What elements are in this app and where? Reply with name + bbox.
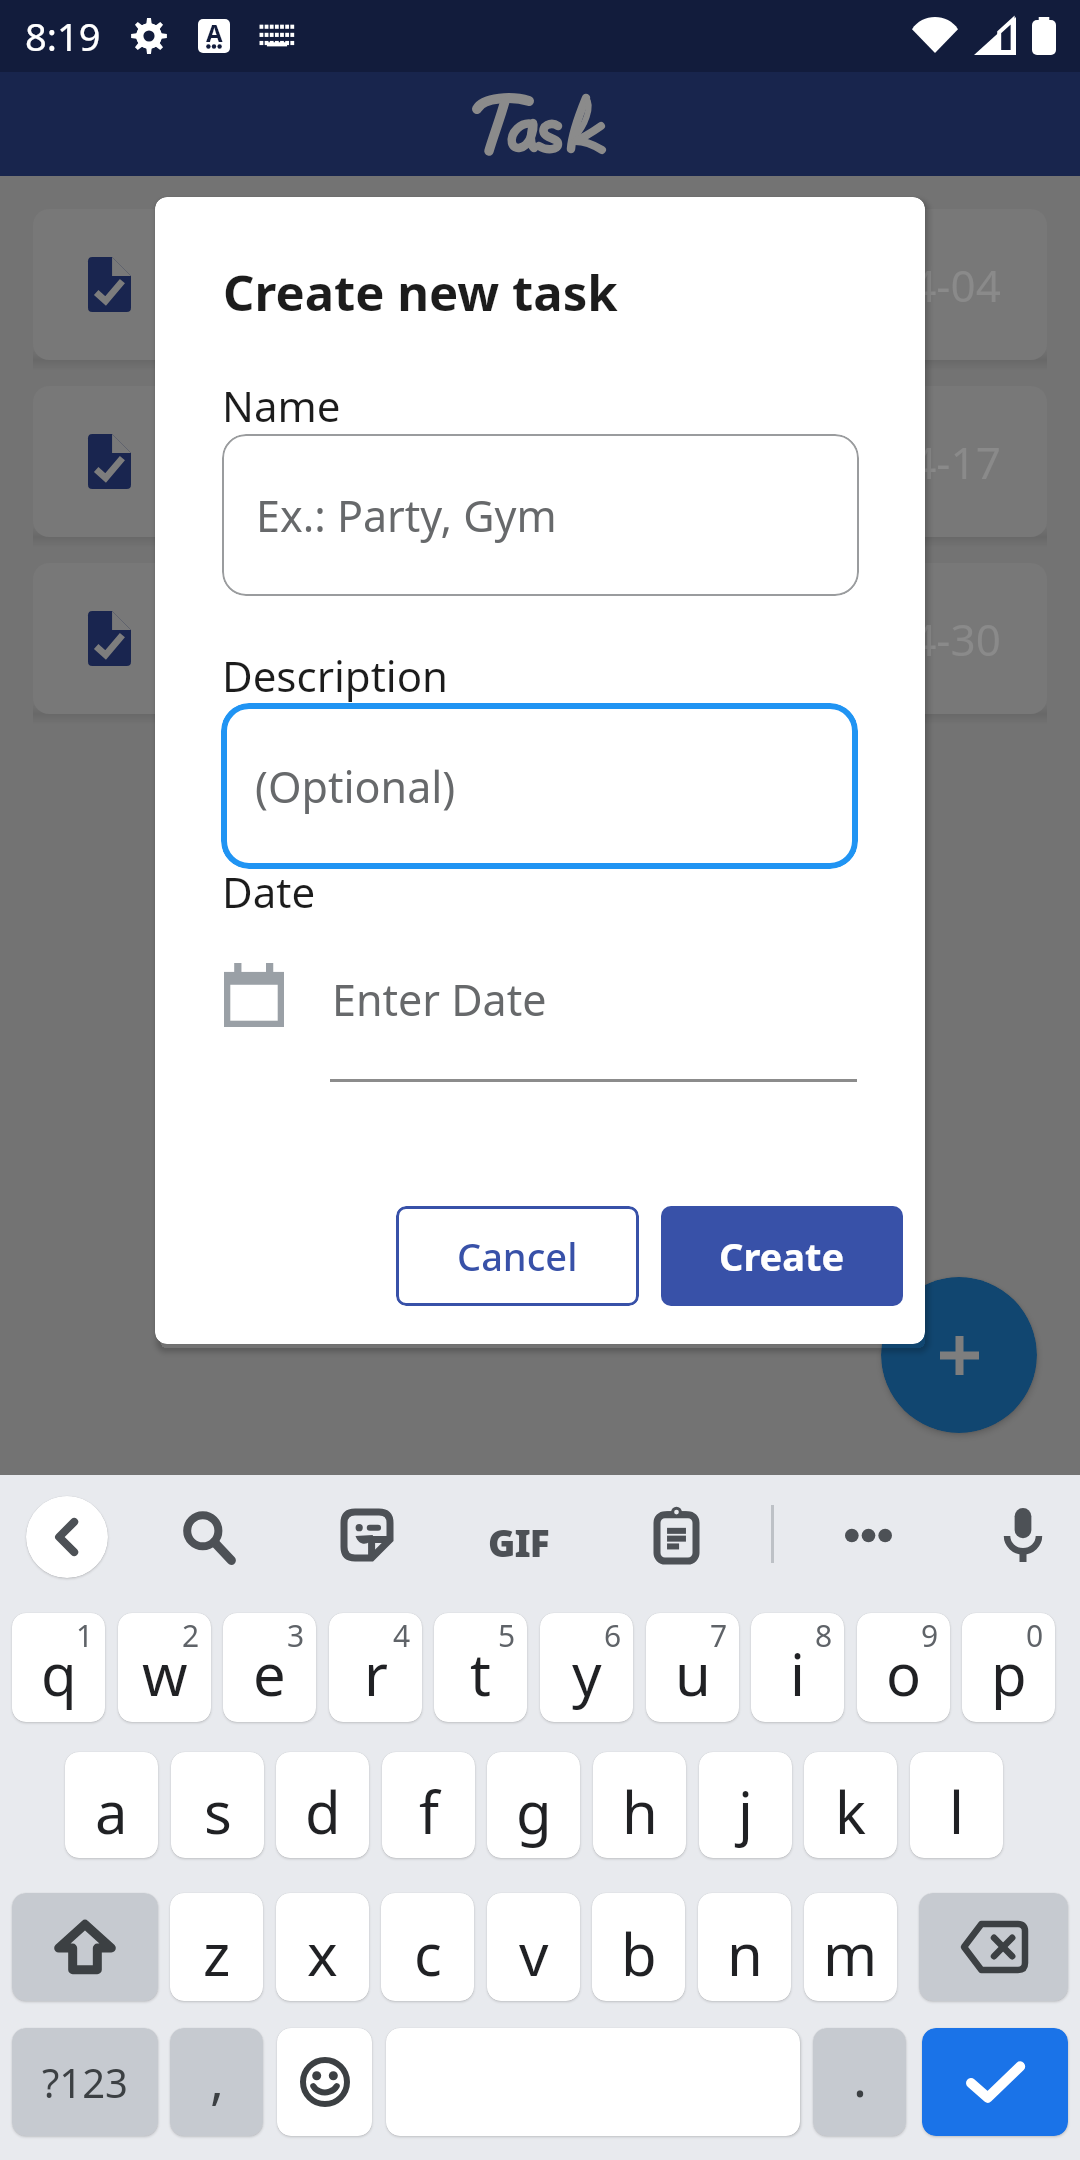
button[interactable]: c xyxy=(381,1893,474,2001)
staticText: 8 xyxy=(815,1615,833,1656)
button[interactable]: 04-04 xyxy=(33,209,1047,360)
staticText: l xyxy=(949,1772,964,1851)
button[interactable]: n xyxy=(698,1893,791,2001)
button[interactable]: u xyxy=(646,1613,739,1722)
staticText: 04-17 xyxy=(886,432,1001,492)
staticText: n xyxy=(727,1914,763,1993)
staticText: i xyxy=(790,1634,805,1713)
button[interactable]: Clipboard xyxy=(655,1509,698,1561)
staticText: v xyxy=(519,1914,549,1993)
button[interactable]: 04-30 xyxy=(33,563,1047,714)
staticText: t xyxy=(470,1634,491,1713)
button[interactable]: Enter xyxy=(922,2028,1068,2136)
button[interactable]: More options xyxy=(845,1528,892,1543)
button[interactable]: Backspace xyxy=(919,1893,1068,2001)
staticText: c xyxy=(414,1914,442,1993)
button[interactable]: i xyxy=(751,1613,844,1722)
button[interactable]: v xyxy=(487,1893,580,2001)
staticText: b xyxy=(621,1914,657,1993)
staticText: e xyxy=(253,1634,286,1713)
button[interactable]: k xyxy=(804,1752,897,1858)
staticText: y xyxy=(572,1634,602,1713)
button[interactable]: q xyxy=(12,1613,105,1722)
staticText: A xyxy=(206,19,223,49)
staticText: q xyxy=(41,1634,77,1713)
button[interactable]: (Optional) xyxy=(221,703,858,869)
button[interactable]: p xyxy=(962,1613,1055,1722)
button[interactable]: a xyxy=(65,1752,158,1858)
staticText: k xyxy=(835,1772,866,1851)
staticText: . xyxy=(853,2041,867,2112)
button[interactable]: Emoji xyxy=(277,2028,372,2136)
button[interactable]: j xyxy=(699,1752,792,1858)
staticText: Create xyxy=(719,1230,845,1282)
button[interactable]: Ex.: Party, Gym xyxy=(222,434,859,596)
staticText: Date xyxy=(222,863,316,920)
button[interactable]: Add task xyxy=(881,1277,1037,1433)
button[interactable]: Cancel xyxy=(396,1206,639,1306)
staticText: a xyxy=(95,1772,128,1851)
staticText: 4 xyxy=(393,1615,411,1656)
staticText: ?123 xyxy=(42,2055,128,2109)
staticText: z xyxy=(203,1914,231,1993)
button[interactable]: g xyxy=(487,1752,580,1858)
staticText: Ex.: Party, Gym xyxy=(256,486,557,545)
button[interactable]: e xyxy=(223,1613,316,1722)
button[interactable]: s xyxy=(171,1752,264,1858)
staticText: r xyxy=(364,1634,388,1713)
button[interactable]: . xyxy=(813,2028,906,2136)
staticText: 04-30 xyxy=(886,609,1001,669)
staticText: 6 xyxy=(604,1615,622,1656)
staticText: m xyxy=(823,1914,878,1993)
button[interactable]: x xyxy=(276,1893,369,2001)
button[interactable]: t xyxy=(434,1613,527,1722)
staticText: g xyxy=(516,1772,552,1851)
staticText: Description xyxy=(222,647,449,704)
staticText: p xyxy=(991,1634,1027,1713)
staticText: h xyxy=(622,1772,658,1851)
button[interactable]: y xyxy=(540,1613,633,1722)
button[interactable]: l xyxy=(910,1752,1003,1858)
button[interactable]: Create xyxy=(661,1206,903,1306)
button[interactable]: m xyxy=(804,1893,897,2001)
staticText: d xyxy=(305,1772,341,1851)
staticText: Create new task xyxy=(223,259,618,326)
staticText: x xyxy=(307,1914,338,1993)
staticText: Name xyxy=(222,377,341,434)
button[interactable]: o xyxy=(857,1613,950,1722)
button[interactable]: 04-17 xyxy=(33,386,1047,537)
staticText: 0 xyxy=(1026,1615,1044,1656)
button[interactable]: d xyxy=(276,1752,369,1858)
staticText: 2 xyxy=(182,1615,200,1656)
button[interactable]: Shift xyxy=(12,1893,158,2001)
staticText: u xyxy=(675,1634,711,1713)
staticText: w xyxy=(142,1634,188,1713)
staticText: 3 xyxy=(287,1615,305,1656)
staticText: 04-04 xyxy=(886,255,1001,315)
button[interactable]: GIF xyxy=(488,1517,549,1567)
button[interactable]: b xyxy=(592,1893,685,2001)
button[interactable]: ?123 xyxy=(12,2028,158,2136)
button[interactable]: f xyxy=(382,1752,475,1858)
staticText: , xyxy=(210,2043,224,2114)
button[interactable]: w xyxy=(118,1613,211,1722)
staticText: Enter Date xyxy=(332,970,547,1029)
staticText: (Optional) xyxy=(255,757,456,816)
button[interactable]: r xyxy=(329,1613,422,1722)
button[interactable]: h xyxy=(593,1752,686,1858)
staticText: f xyxy=(419,1772,439,1851)
staticText: s xyxy=(204,1772,232,1851)
button[interactable]: z xyxy=(170,1893,263,2001)
staticText: 1 xyxy=(76,1615,94,1656)
staticText: 9 xyxy=(921,1615,939,1656)
staticText: o xyxy=(886,1634,922,1713)
button[interactable]: Back xyxy=(26,1496,108,1578)
staticText: 5 xyxy=(498,1615,516,1656)
staticText: j xyxy=(738,1772,753,1851)
staticText: Cancel xyxy=(457,1230,578,1282)
button[interactable]: Voice input xyxy=(1004,1508,1042,1562)
button[interactable]: Stickers xyxy=(344,1512,390,1558)
button[interactable]: , xyxy=(170,2028,263,2136)
button[interactable]: Search xyxy=(182,1511,234,1563)
